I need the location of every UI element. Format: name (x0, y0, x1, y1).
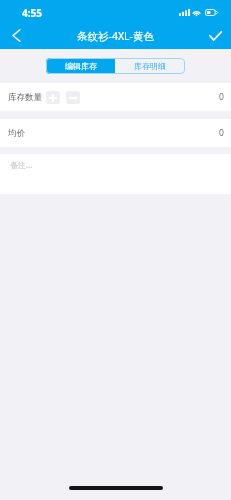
staticText: 0 (219, 127, 224, 139)
button[interactable]: 备注 (0, 154, 231, 194)
staticText: 备注... (10, 159, 33, 170)
button[interactable]: Back (0, 22, 32, 49)
button[interactable]: 库存数量 (8, 83, 224, 111)
staticText: 编辑库存 (65, 61, 97, 71)
button[interactable]: Confirm (199, 22, 231, 49)
staticText: 均价 (8, 128, 25, 139)
staticText: 库存数量 (8, 92, 42, 103)
staticText: 4:55 (22, 6, 42, 20)
staticText: 库存明细 (134, 61, 166, 71)
button[interactable]: 库存明细 (115, 58, 185, 74)
button[interactable]: Increase (46, 91, 60, 104)
button[interactable]: Decrease (66, 91, 80, 104)
staticText: 条纹衫-4XL-黄色 (77, 29, 154, 43)
button[interactable]: 均价 (8, 119, 224, 147)
button[interactable]: 编辑库存 (46, 58, 115, 74)
staticText: 0 (219, 91, 224, 103)
